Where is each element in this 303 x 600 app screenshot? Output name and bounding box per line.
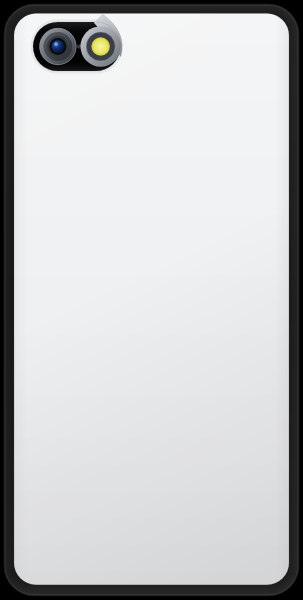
button[interactable]: Phone case back view (0, 0, 303, 600)
